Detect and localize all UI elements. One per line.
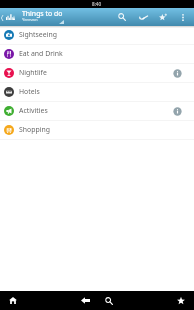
staticText: Sightseeing: [19, 30, 57, 39]
staticText: 8:40: [92, 1, 102, 7]
button[interactable]: Search: [113, 8, 131, 26]
button[interactable]: Edit: [134, 8, 152, 26]
button[interactable]: More options: [174, 8, 192, 26]
button[interactable]: Back: [76, 291, 95, 310]
staticText: Hotels: [19, 87, 40, 96]
button[interactable]: Shopping: [0, 121, 194, 140]
staticText: Shopping: [19, 125, 50, 134]
button[interactable]: Back: [0, 8, 17, 26]
button[interactable]: Activities: [0, 102, 194, 121]
button[interactable]: Home: [3, 291, 22, 310]
button[interactable]: Favorite: [154, 8, 172, 26]
button[interactable]: Eat and Drink: [0, 45, 194, 64]
staticText: Yerevan: [22, 17, 38, 23]
button[interactable]: Search: [99, 291, 118, 310]
button[interactable]: Hotels: [0, 83, 194, 102]
staticText: Eat and Drink: [19, 49, 63, 58]
staticText: Things to do: [22, 9, 63, 18]
staticText: Nightlife: [19, 68, 47, 77]
button[interactable]: Nightlife: [0, 64, 194, 83]
staticText: Activities: [19, 106, 48, 115]
button[interactable]: Sightseeing: [0, 26, 194, 45]
button[interactable]: Favorites: [171, 291, 190, 310]
